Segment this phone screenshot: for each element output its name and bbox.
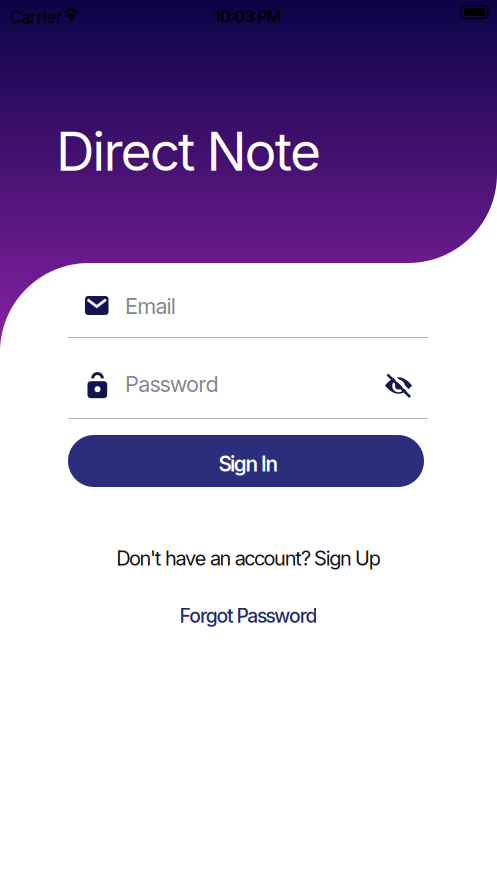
- staticText: Password: [125, 371, 218, 397]
- button[interactable]: Don't have an account? Sign Up: [116, 546, 381, 570]
- button[interactable]: Show password: [385, 374, 413, 398]
- staticText: Direct Note: [56, 119, 321, 183]
- staticText: Email: [125, 293, 176, 319]
- button[interactable]: Forgot Password: [180, 604, 317, 627]
- staticText: Carrier: [10, 7, 62, 27]
- button[interactable]: Sign In: [68, 435, 424, 487]
- staticText: Forgot Password: [180, 604, 317, 627]
- staticText: Don't have an account? Sign Up: [116, 546, 381, 570]
- staticText: 10:03 PM: [214, 7, 281, 26]
- staticText: Sign In: [218, 451, 279, 476]
